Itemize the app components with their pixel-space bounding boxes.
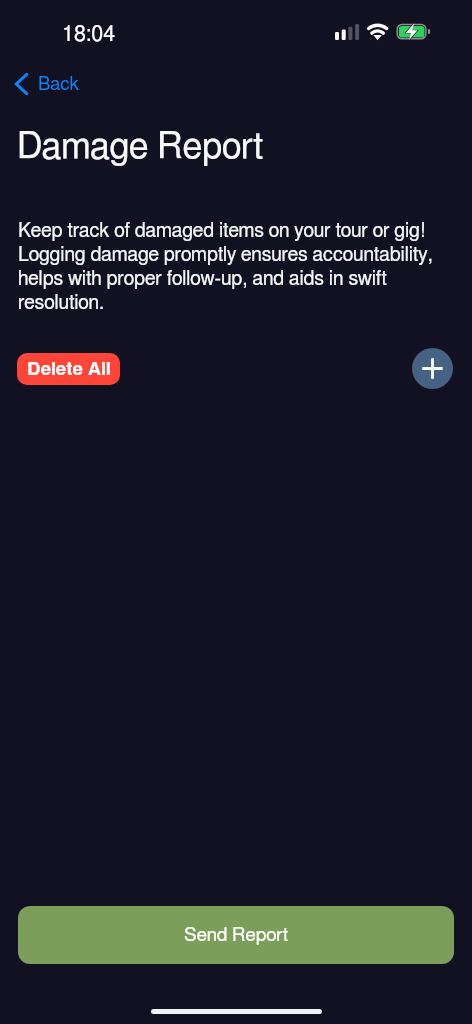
staticText: Back xyxy=(38,75,80,94)
staticText: Damage Report xyxy=(17,129,264,165)
staticText: Send Report xyxy=(184,926,288,945)
button[interactable]: Send Report xyxy=(18,906,454,964)
button[interactable]: Back xyxy=(13,71,82,97)
staticText: Delete All xyxy=(27,360,111,379)
staticText: 18:04 xyxy=(62,24,116,46)
staticText: Keep track of damaged items on your tour… xyxy=(18,218,442,314)
button[interactable]: Add damage item xyxy=(412,348,453,389)
button[interactable]: Delete All xyxy=(17,353,120,385)
